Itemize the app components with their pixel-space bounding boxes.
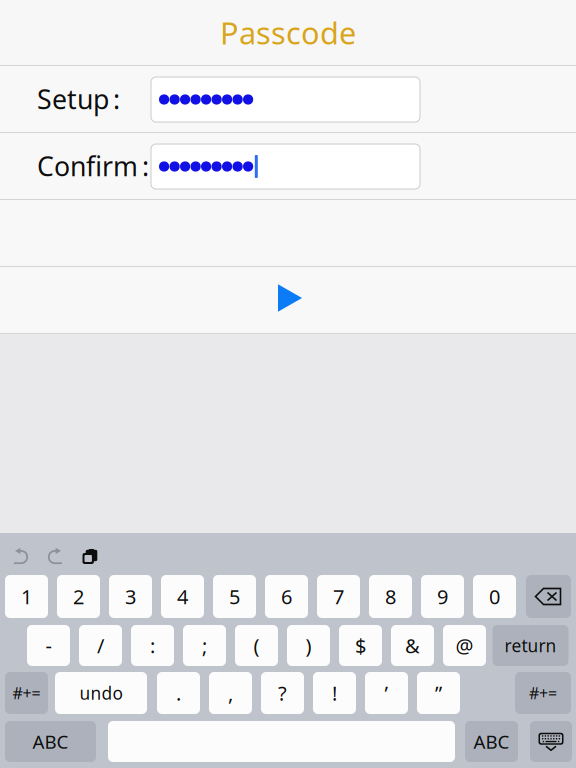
staticText: ABC <box>473 729 509 754</box>
button[interactable]: 1 <box>5 575 48 618</box>
staticText: #+= <box>529 682 557 704</box>
button[interactable]: , <box>209 672 252 714</box>
button[interactable]: ” <box>417 672 460 714</box>
button[interactable]: : <box>131 625 174 666</box>
button[interactable]: $ <box>339 625 382 666</box>
button[interactable]: Undo <box>2 540 38 574</box>
button[interactable]: ) <box>287 625 330 666</box>
staticText: 6 <box>281 583 292 610</box>
staticText: 1 <box>21 583 32 610</box>
button[interactable]: ’ <box>365 672 408 714</box>
button[interactable]: return <box>492 625 568 666</box>
staticText: / <box>97 632 104 659</box>
button[interactable]: undo <box>55 672 147 714</box>
button[interactable]: ; <box>183 625 226 666</box>
button[interactable]: Hide keyboard <box>530 721 572 762</box>
button[interactable]: ABC <box>5 721 96 762</box>
staticText: : <box>142 148 149 184</box>
button[interactable]: 2 <box>57 575 100 618</box>
staticText: 5 <box>229 583 240 610</box>
staticText: ( <box>253 632 259 659</box>
staticText: @ <box>455 632 473 659</box>
button[interactable]: 0 <box>473 575 516 618</box>
staticText: return <box>504 634 556 657</box>
button[interactable]: Delete <box>526 575 571 618</box>
staticText: 3 <box>125 583 136 610</box>
button[interactable]: 9 <box>421 575 464 618</box>
button[interactable]: #+= <box>515 672 571 714</box>
staticText: 9 <box>437 583 448 610</box>
button[interactable]: & <box>391 625 434 666</box>
staticText: : <box>150 632 155 659</box>
staticText: Setup <box>37 81 109 117</box>
staticText: 7 <box>333 583 344 610</box>
staticText: $ <box>355 632 366 659</box>
button[interactable]: 7 <box>317 575 360 618</box>
staticText: ! <box>332 680 337 706</box>
button[interactable]: Submit <box>268 274 312 322</box>
staticText: ; <box>202 632 207 659</box>
button[interactable]: ? <box>261 672 304 714</box>
staticText: : <box>113 81 120 117</box>
button[interactable]: Redo <box>38 540 74 574</box>
staticText: . <box>176 680 181 706</box>
staticText: & <box>405 632 420 659</box>
staticText: ) <box>305 632 311 659</box>
staticText: #+= <box>12 682 40 704</box>
button[interactable]: 6 <box>265 575 308 618</box>
staticText: 4 <box>177 583 188 610</box>
staticText: 0 <box>489 583 500 610</box>
button[interactable]: ABC <box>465 721 518 762</box>
staticText: - <box>45 632 51 659</box>
staticText: , <box>228 680 233 706</box>
button[interactable]: 3 <box>109 575 152 618</box>
staticText: ” <box>435 680 442 706</box>
button[interactable]: . <box>157 672 200 714</box>
staticText: ABC <box>32 729 68 754</box>
button[interactable]: Paste <box>74 540 106 574</box>
button[interactable]: 5 <box>213 575 256 618</box>
button[interactable]: @ <box>443 625 486 666</box>
staticText: ’ <box>384 680 388 706</box>
staticText: undo <box>79 681 122 704</box>
staticText: Passcode <box>220 12 356 53</box>
button[interactable]: ( <box>235 625 278 666</box>
button[interactable]: - <box>27 625 70 666</box>
button[interactable]: ! <box>313 672 356 714</box>
staticText: 2 <box>73 583 84 610</box>
button[interactable]: / <box>79 625 122 666</box>
staticText: 8 <box>385 583 396 610</box>
staticText: Confirm <box>37 148 138 184</box>
button[interactable]: 8 <box>369 575 412 618</box>
button[interactable]: 4 <box>161 575 204 618</box>
button[interactable]: #+= <box>5 672 48 714</box>
staticText: ? <box>278 680 287 706</box>
